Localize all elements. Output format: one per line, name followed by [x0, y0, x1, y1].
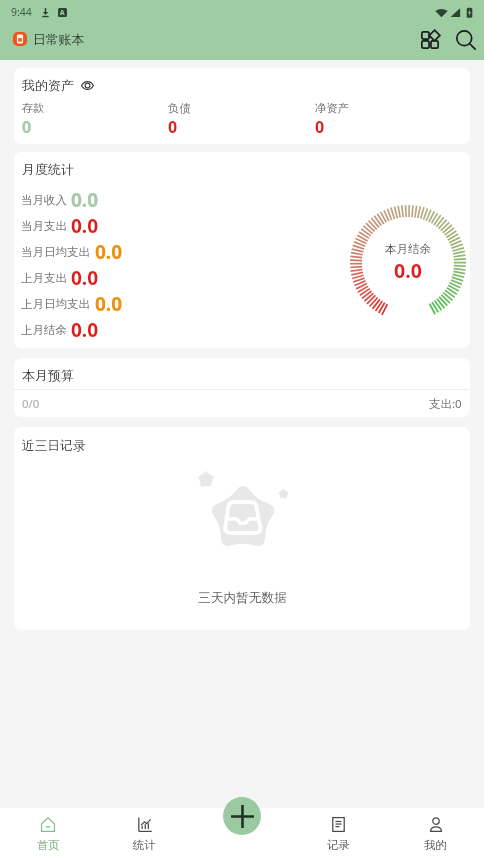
staticText: 存款: [22, 101, 45, 115]
staticText: 三天内暂无数据: [198, 590, 287, 606]
staticText: 近三日记录: [22, 438, 86, 454]
staticText: 我的资产: [22, 77, 74, 93]
button[interactable]: 我的资产: [22, 77, 94, 93]
staticText: 上月日均支出: [21, 297, 90, 311]
staticText: 我的: [424, 838, 447, 852]
staticText: 净资产: [315, 101, 349, 115]
staticText: 当月日均支出: [21, 245, 90, 259]
staticText: A: [60, 8, 65, 17]
staticText: 负债: [168, 101, 191, 115]
button[interactable]: Add record: [223, 797, 261, 835]
staticText: 0.0: [71, 187, 99, 213]
staticText: 0.0: [71, 213, 99, 239]
staticText: 0.0: [71, 317, 99, 343]
staticText: 本月预算: [22, 367, 74, 383]
button[interactable]: Categories: [414, 24, 446, 56]
button[interactable]: 首页: [0, 808, 96, 860]
staticText: 本月结余: [385, 242, 432, 257]
staticText: 0.0: [95, 291, 123, 317]
staticText: 日常账本: [33, 32, 85, 48]
staticText: 支出:0: [429, 396, 462, 412]
staticText: 统计: [133, 838, 156, 852]
staticText: 0: [168, 116, 178, 138]
staticText: 0.0: [95, 239, 123, 265]
staticText: 0: [315, 116, 325, 138]
staticText: 上月结余: [21, 323, 67, 337]
button[interactable]: 记录: [290, 808, 387, 860]
button[interactable]: Search: [450, 24, 482, 56]
staticText: 记录: [327, 838, 350, 852]
staticText: 0: [22, 116, 32, 138]
staticText: 月度统计: [22, 161, 74, 177]
staticText: 上月支出: [21, 271, 67, 285]
staticText: 首页: [37, 838, 60, 852]
staticText: 0.0: [71, 265, 99, 291]
button[interactable]: 统计: [96, 808, 193, 860]
staticText: 9:44: [11, 5, 32, 19]
staticText: 0.0: [394, 257, 422, 284]
staticText: 当月收入: [21, 193, 67, 207]
staticText: 0/0: [22, 396, 40, 412]
staticText: 当月支出: [21, 219, 67, 233]
button[interactable]: 我的: [387, 808, 484, 860]
